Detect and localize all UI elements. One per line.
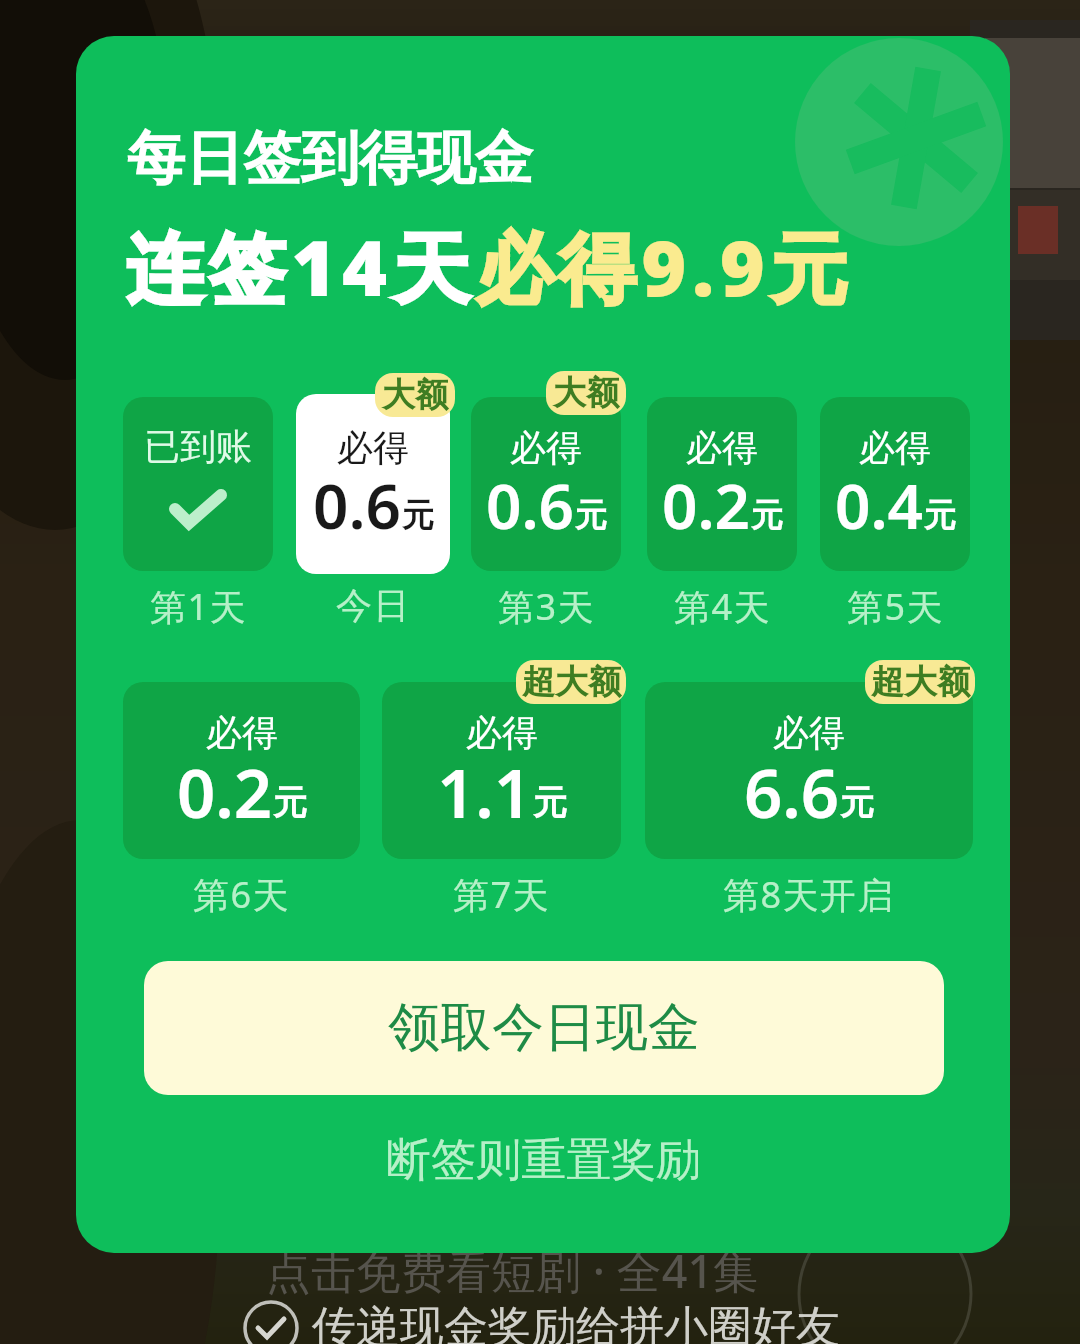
staticText: 今日 [336, 583, 411, 628]
staticText: 元 [273, 781, 307, 824]
staticText: 元 [533, 781, 567, 824]
staticText: 每日签到得现金 [127, 122, 533, 195]
staticText: 大额 [382, 374, 448, 416]
staticText: 超大额 [871, 661, 970, 703]
staticText: 元 [575, 495, 607, 535]
other: Collected [169, 489, 227, 530]
staticText: 0.4 [835, 463, 924, 547]
staticText: 元 [924, 495, 956, 535]
staticText: 必得 [466, 710, 538, 755]
staticText: 元 [402, 495, 434, 535]
staticText: 已到账 [144, 424, 252, 469]
staticText: 必得9.9元 [476, 214, 854, 319]
staticText: 0.6 [486, 463, 575, 547]
staticText: 传递现金奖励给拼小圈好友 [312, 1300, 840, 1344]
staticText: 0.2 [662, 463, 751, 547]
staticText: 必得 [337, 425, 409, 470]
other: Duoduo logo watermark [76, 36, 1010, 1253]
staticText: 领取今日现金 [388, 995, 700, 1061]
button[interactable]: 必得 [647, 397, 797, 571]
button[interactable]: 必得 [296, 394, 450, 574]
staticText: 第7天 [453, 870, 550, 919]
staticText: 第8天开启 [723, 870, 895, 919]
staticText: 必得 [206, 710, 278, 755]
staticText: 1.1 [437, 746, 533, 837]
button[interactable]: 已到账 [123, 397, 273, 571]
staticText: 0.6 [313, 463, 402, 547]
staticText: 必得 [510, 425, 582, 470]
staticText: 大额 [553, 372, 619, 414]
staticText: 必得 [859, 425, 931, 470]
staticText: 第4天 [674, 582, 771, 631]
staticText: 6.6 [744, 746, 840, 837]
staticText: 必得 [686, 425, 758, 470]
button[interactable]: 必得 [382, 682, 621, 859]
button[interactable]: 必得 [471, 397, 621, 571]
button[interactable]: 必得 [820, 397, 970, 571]
staticText: 第5天 [847, 582, 944, 631]
staticText: 0.2 [177, 746, 273, 837]
staticText: 元 [840, 781, 874, 824]
staticText: 元 [751, 495, 783, 535]
button[interactable]: 必得 [645, 682, 973, 859]
staticText: 断签则重置奖励 [386, 1132, 701, 1189]
staticText: 连签14天 [126, 214, 476, 319]
staticText: 点击免费看短剧 · 全41集 [266, 1240, 759, 1301]
button[interactable]: 领取今日现金 [144, 961, 944, 1095]
staticText: 超大额 [522, 661, 621, 703]
staticText: 必得 [773, 710, 845, 755]
button[interactable]: 必得 [123, 682, 360, 859]
staticText: 第3天 [498, 582, 595, 631]
staticText: 第1天 [150, 582, 247, 631]
staticText: 第6天 [193, 870, 290, 919]
